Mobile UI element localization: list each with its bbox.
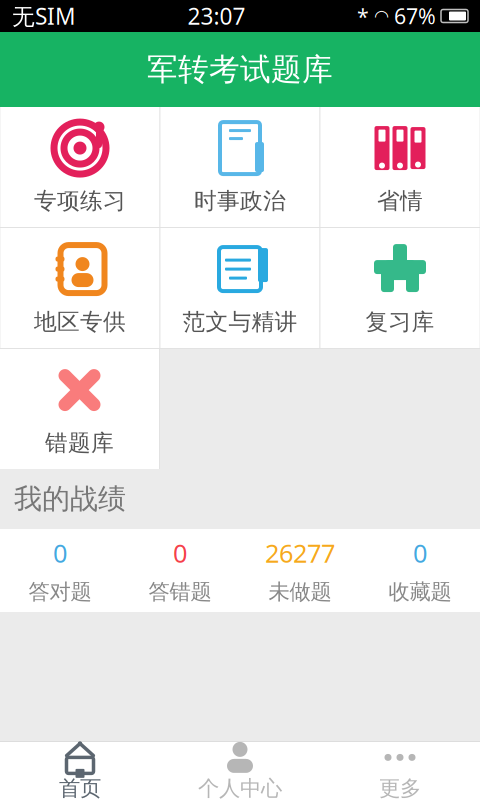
staticText: 未做题 (268, 579, 331, 605)
button[interactable]: 个人中心 (160, 742, 320, 800)
staticText: ◠ (374, 6, 389, 26)
button[interactable]: 省情 (320, 107, 479, 227)
staticText: 答错题 (148, 579, 211, 605)
staticText: * (357, 2, 369, 30)
staticText: 首页 (59, 775, 101, 800)
staticText: 答对题 (28, 579, 91, 605)
staticText: 0 (413, 536, 427, 570)
staticText: 收藏题 (388, 579, 451, 605)
button[interactable]: 专项练习 (0, 107, 159, 227)
staticText: 67% (394, 2, 436, 30)
staticText: 个人中心 (198, 775, 282, 800)
staticText: 0 (173, 536, 187, 570)
staticText: 26277 (265, 536, 335, 570)
staticText: 更多 (379, 775, 421, 800)
staticText: 省情 (377, 187, 423, 215)
button[interactable]: 更多 (320, 742, 480, 800)
staticText: 时事政治 (194, 187, 286, 215)
staticText: 我的战绩 (14, 482, 126, 516)
staticText: 地区专供 (34, 308, 126, 336)
staticText: 专项练习 (34, 187, 126, 215)
button[interactable]: 首页 (0, 742, 160, 800)
staticText: 复习库 (365, 308, 434, 336)
button[interactable]: 错题库 (0, 349, 159, 469)
button[interactable]: 范文与精讲 (160, 228, 319, 348)
button[interactable]: 地区专供 (0, 228, 159, 348)
button[interactable]: 时事政治 (160, 107, 319, 227)
button[interactable]: 复习库 (320, 228, 479, 348)
staticText: 军转考试题库 (147, 51, 333, 88)
staticText: 错题库 (45, 429, 114, 457)
staticText: 无SIM (12, 1, 76, 31)
staticText: 0 (53, 536, 67, 570)
staticText: 23:07 (187, 1, 245, 31)
staticText: 范文与精讲 (182, 308, 297, 336)
